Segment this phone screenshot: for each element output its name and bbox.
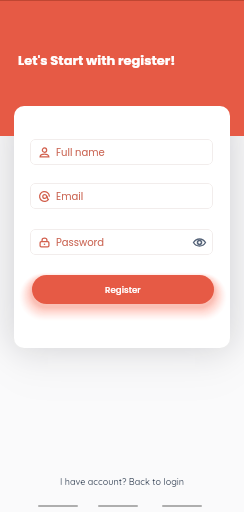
staticText: I have account? Back to login	[60, 476, 185, 487]
button[interactable]: I have account? Back to login	[54, 473, 191, 490]
staticText: Password	[56, 235, 105, 249]
staticText: Let's Start with register!	[18, 51, 176, 69]
staticText: Full name	[56, 145, 105, 159]
staticText: Register	[105, 284, 141, 296]
button[interactable]: Full name	[30, 139, 213, 165]
button[interactable]: Password	[30, 229, 213, 255]
button[interactable]: Show password	[193, 236, 206, 249]
button[interactable]: Email	[30, 183, 213, 209]
staticText: Email	[56, 189, 84, 203]
button[interactable]: Register	[32, 275, 214, 304]
